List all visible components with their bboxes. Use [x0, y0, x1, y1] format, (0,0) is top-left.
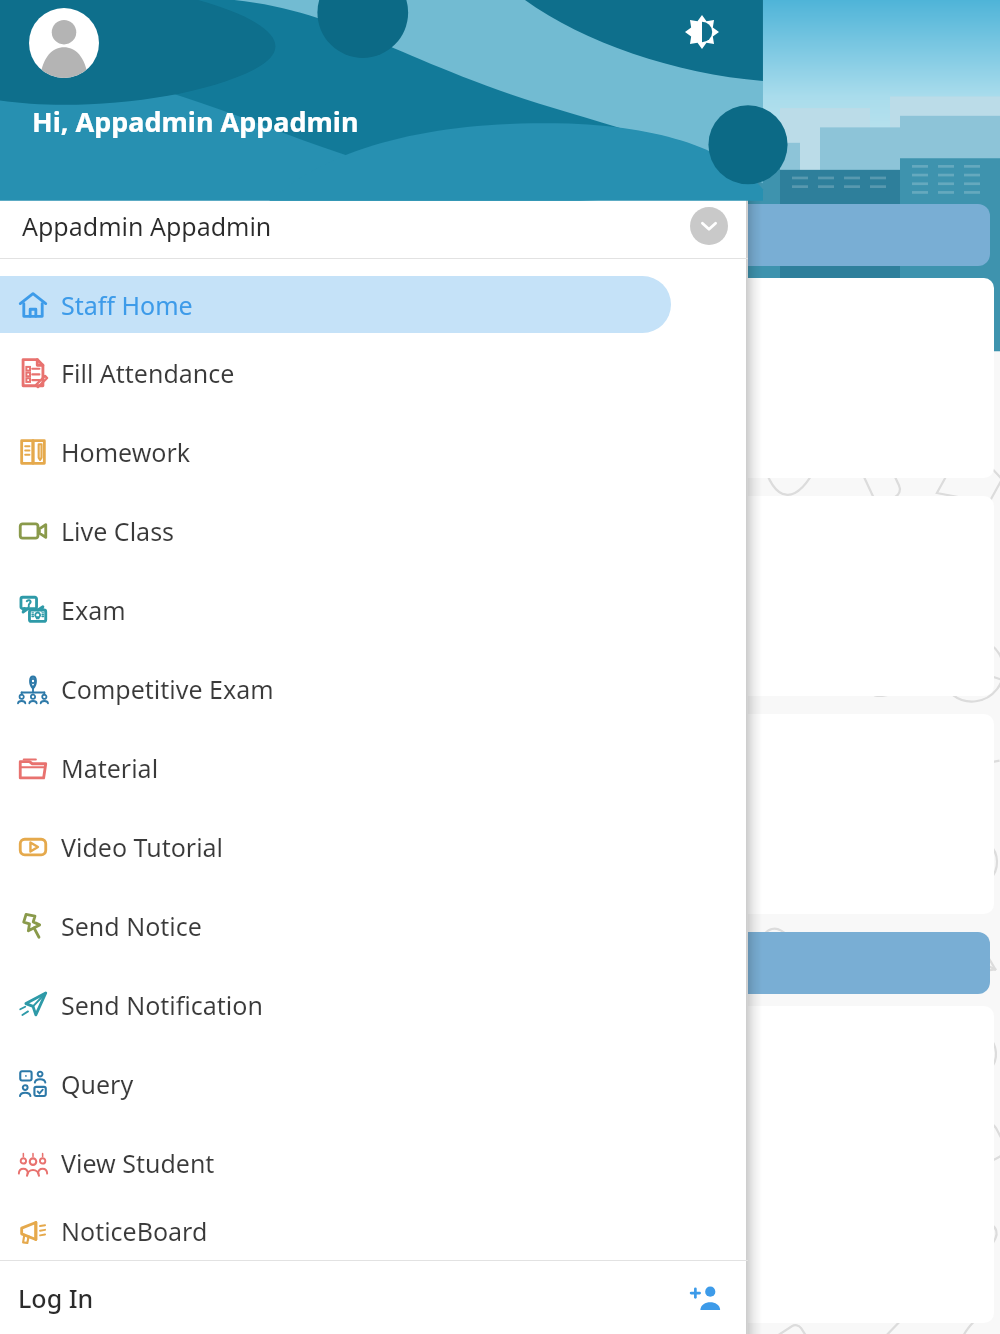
staticText: Daily — [55, 296, 128, 335]
staticText: Study — [55, 514, 138, 553]
staticText: Live Class — [61, 514, 175, 548]
button[interactable]: Fill Attendance — [19, 357, 994, 452]
button[interactable]: Send Notice — [19, 793, 994, 888]
staticText: Competitive Exam — [61, 672, 274, 706]
button[interactable]: Staff Home — [0, 276, 748, 333]
button[interactable]: NoticeBoard — [19, 1085, 994, 1180]
staticText: Send Notification — [61, 988, 263, 1022]
button[interactable]: Material — [0, 728, 748, 807]
button[interactable]: Communication — [19, 714, 994, 914]
button[interactable]: Appadmin Appadmin — [0, 193, 748, 258]
staticText: Staff Home — [61, 288, 193, 322]
staticText: Log In — [18, 1281, 94, 1315]
button[interactable]: Exam — [0, 570, 748, 649]
button[interactable]: View Student — [0, 1123, 748, 1202]
button[interactable]: Exam — [19, 575, 994, 670]
button[interactable]: For Student — [19, 204, 990, 266]
button[interactable]: Competitive Exam — [0, 649, 748, 728]
staticText: Send Notice — [61, 909, 202, 943]
staticText: Hi, Appadmin Appadmin — [32, 103, 359, 140]
staticText: Homework — [61, 435, 191, 469]
button[interactable]: Add account — [684, 1276, 728, 1320]
staticText: Fill Attendance — [61, 356, 235, 390]
button[interactable]: Study — [19, 496, 994, 696]
button[interactable]: NoticeBoard — [0, 1202, 748, 1260]
staticText: Appadmin Appadmin — [22, 209, 272, 243]
button[interactable]: Profile photo — [29, 8, 99, 78]
staticText: Communication — [55, 732, 286, 771]
button[interactable]: Daily — [19, 278, 994, 478]
button[interactable]: Query — [0, 1044, 748, 1123]
button[interactable]: Expand account — [690, 207, 728, 245]
button[interactable]: Live Class — [0, 491, 748, 570]
button[interactable]: Send Notification — [0, 965, 748, 1044]
staticText: Exam — [61, 593, 126, 627]
button[interactable]: Send Notice — [0, 886, 748, 965]
button[interactable]: Fill Attendance — [0, 333, 748, 412]
button[interactable]: Daily — [19, 1006, 994, 1323]
button[interactable]: Toggle brightness — [678, 8, 726, 56]
staticText: NoticeBoard — [61, 1214, 208, 1248]
staticText: For Student — [91, 216, 261, 255]
button[interactable]: Video Tutorial — [0, 807, 748, 886]
button[interactable]: Manage Live Class — [19, 1202, 994, 1297]
button[interactable]: Homework — [0, 412, 748, 491]
staticText: Query — [61, 1067, 134, 1101]
button[interactable]: Log In — [0, 1261, 748, 1334]
button[interactable]: For Teacher — [19, 932, 990, 994]
staticText: Video Tutorial — [61, 830, 224, 864]
staticText: Material — [61, 751, 159, 785]
button[interactable]: Back — [22, 8, 70, 56]
staticText: View Student — [61, 1146, 215, 1180]
